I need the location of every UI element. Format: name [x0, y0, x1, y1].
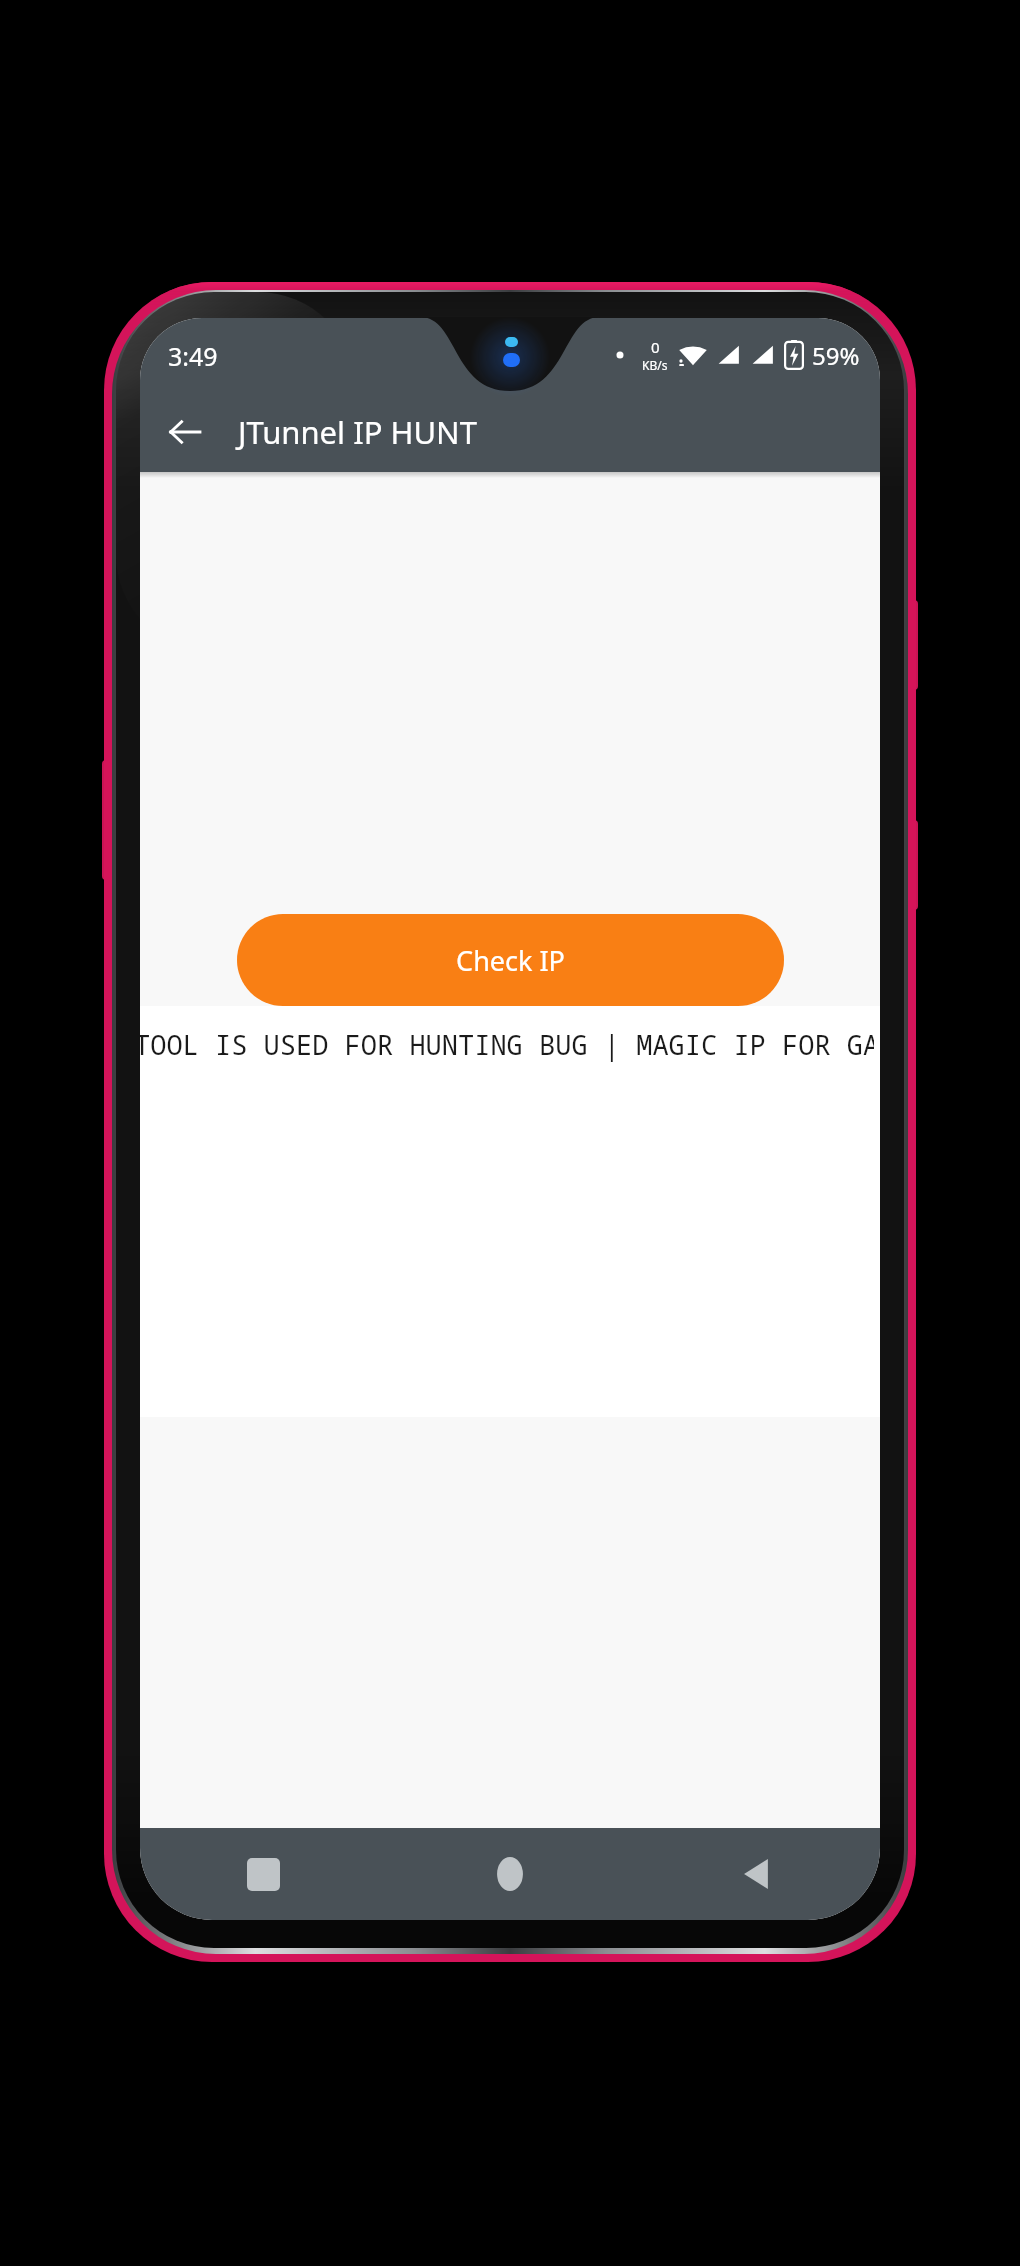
staticText: Check IP: [456, 942, 565, 979]
staticText: 59%: [812, 339, 860, 372]
staticText: 3:49: [168, 339, 218, 373]
button[interactable]: Recent apps: [140, 1828, 386, 1920]
button[interactable]: Back: [154, 401, 216, 463]
staticText: KB/s: [642, 357, 668, 373]
staticText: TOOL IS USED FOR HUNTING BUG | MAGIC IP …: [140, 1026, 874, 1063]
button[interactable]: Back: [633, 1828, 880, 1920]
button[interactable]: Home: [386, 1828, 633, 1920]
staticText: 0: [651, 337, 660, 357]
button[interactable]: Check IP: [237, 914, 784, 1006]
staticText: JTunnel IP HUNT: [238, 411, 477, 453]
button[interactable]: TOOL IS USED FOR HUNTING BUG | MAGIC IP …: [140, 1006, 880, 1078]
